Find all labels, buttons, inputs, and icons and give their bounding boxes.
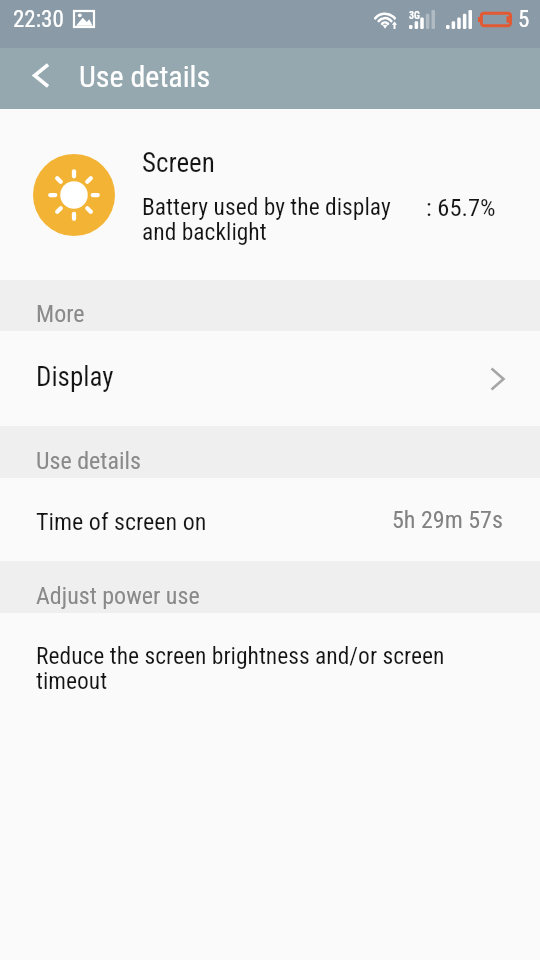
staticText: More [36, 300, 85, 328]
staticText: 3G [409, 10, 420, 22]
staticText: : 65.7% [426, 193, 496, 222]
staticText: Use details [36, 447, 141, 475]
button[interactable]: Time of screen on [0, 478, 540, 561]
button[interactable]: Back [0, 48, 82, 109]
staticText: Display [36, 361, 114, 393]
staticText: Reduce the screen brightness and/or scre… [36, 642, 470, 695]
staticText: 5h 29m 57s [392, 506, 503, 534]
staticText: 5 [518, 6, 530, 33]
staticText: Time of screen on [36, 508, 207, 536]
staticText: 22:30 [13, 6, 64, 33]
staticText: Battery used by the display and backligh… [142, 193, 391, 246]
button[interactable]: Display [0, 331, 540, 426]
staticText: Adjust power use [36, 582, 200, 610]
staticText: Use details [79, 59, 211, 94]
staticText: Screen [142, 147, 215, 179]
